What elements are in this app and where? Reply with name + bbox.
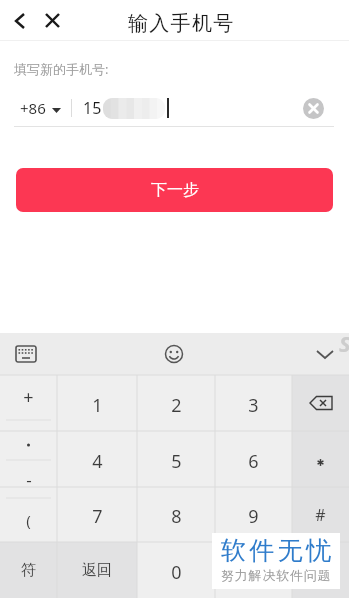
staticText: + <box>23 385 34 410</box>
staticText: # <box>315 504 326 526</box>
button[interactable]: 3 <box>215 377 292 433</box>
staticText: 15 <box>83 97 102 119</box>
button[interactable] <box>292 375 349 431</box>
button[interactable]: 2 <box>137 377 215 433</box>
staticText: 符 <box>21 561 36 580</box>
staticText: +86 <box>20 98 46 118</box>
button[interactable] <box>303 98 324 119</box>
button[interactable]: + <box>0 375 57 420</box>
staticText: 5 <box>171 449 182 474</box>
button[interactable]: 8 <box>137 489 215 544</box>
button[interactable] <box>0 420 57 460</box>
staticText: S <box>339 328 349 358</box>
staticText: 6 <box>248 449 259 474</box>
staticText: 8 <box>171 504 182 529</box>
button[interactable]: 下一步 <box>16 168 333 212</box>
button[interactable]: 5 <box>137 433 215 489</box>
staticText: - <box>26 468 32 491</box>
button[interactable]: 7 <box>57 489 137 544</box>
button[interactable] <box>10 11 32 33</box>
button[interactable]: 1 <box>57 377 137 433</box>
button[interactable]: # <box>292 487 349 542</box>
staticText: 下一步 <box>151 180 199 200</box>
button[interactable]: 4 <box>57 433 137 489</box>
button[interactable]: 0 <box>137 544 215 598</box>
staticText: 1 <box>92 393 103 418</box>
button[interactable] <box>164 344 184 364</box>
button[interactable]: 符 <box>0 542 57 598</box>
button[interactable]: - <box>0 460 57 498</box>
button[interactable] <box>42 10 64 32</box>
staticText: 填写新的手机号: <box>14 60 109 78</box>
button[interactable] <box>314 345 336 363</box>
staticText: 努力解决软件问题 <box>221 567 332 583</box>
button[interactable] <box>14 344 38 364</box>
staticText: 软件无忧 <box>219 535 333 566</box>
staticText: 7 <box>92 504 103 529</box>
staticText: 返回 <box>82 561 112 580</box>
staticText: 输入手机号 <box>128 11 235 36</box>
button[interactable]: ( <box>0 498 57 542</box>
staticText: 0 <box>171 560 182 585</box>
button[interactable]: 9 <box>215 489 292 544</box>
button[interactable] <box>292 431 349 487</box>
staticText: 9 <box>248 504 259 529</box>
button[interactable]: +86 <box>20 98 61 118</box>
button[interactable]: 返回 <box>57 542 137 598</box>
button[interactable]: 6 <box>215 433 292 489</box>
staticText: 3 <box>248 393 259 418</box>
staticText: 2 <box>171 393 182 418</box>
staticText: 4 <box>92 449 103 474</box>
button[interactable] <box>215 542 292 598</box>
staticText: ( <box>26 510 31 530</box>
